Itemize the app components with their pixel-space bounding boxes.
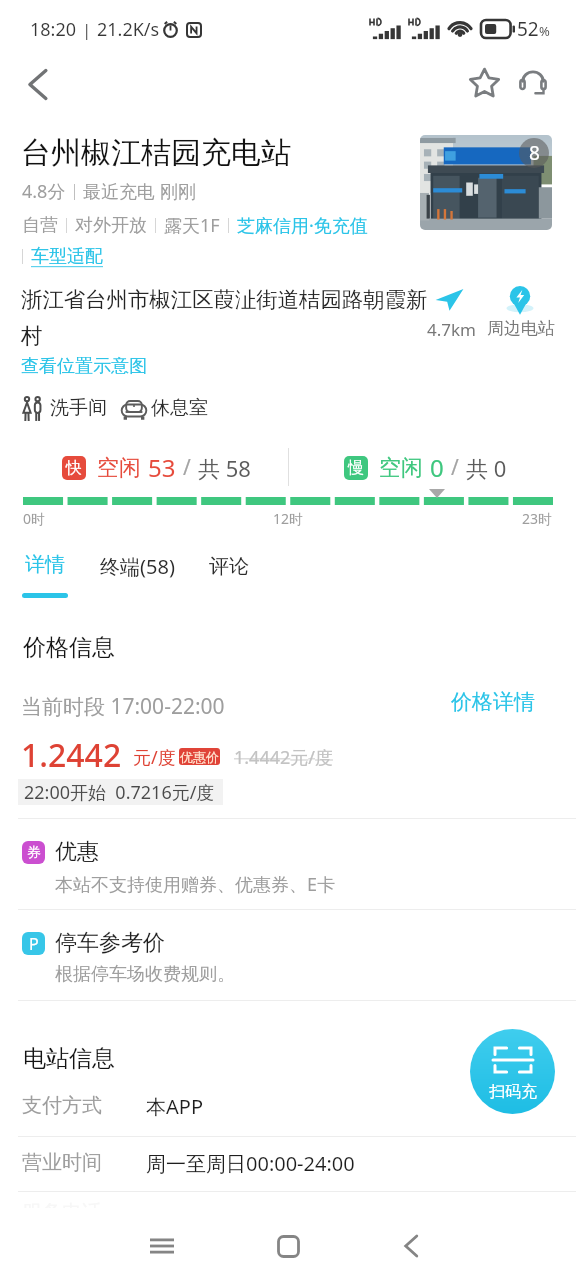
button[interactable]: 车型适配	[31, 245, 103, 268]
button[interactable]: Scan to charge	[470, 1029, 555, 1114]
staticText: 53	[148, 451, 176, 484]
staticText: 查看位置示意图	[21, 355, 147, 378]
staticText: 价格信息	[23, 633, 115, 662]
staticText: 23时	[522, 509, 553, 528]
staticText: 电站信息	[23, 1044, 115, 1073]
staticText: 支付方式	[22, 1093, 102, 1118]
button[interactable]: 营业时间	[0, 1143, 576, 1193]
staticText: 根据停车场收费规则。	[55, 963, 235, 986]
staticText: %	[539, 22, 550, 40]
staticText: 共 0	[466, 453, 507, 483]
staticText: 浙江省台州市椒江区葭沚街道桔园路朝霞新村	[21, 286, 433, 349]
staticText: 元/度	[133, 745, 176, 770]
staticText: 优惠	[55, 838, 99, 866]
button[interactable]: Station photos	[420, 135, 552, 230]
staticText: 1.2442	[21, 733, 122, 777]
button[interactable]: Recent apps	[132, 1216, 192, 1276]
staticText: 休息室	[151, 396, 208, 420]
staticText: 8	[529, 140, 540, 166]
staticText: 露天1F	[164, 213, 220, 238]
button[interactable]: 终端(58)	[85, 546, 189, 586]
button[interactable]: Back	[9, 56, 65, 112]
staticText: 18:20	[30, 17, 77, 42]
button[interactable]: 支付方式	[0, 1086, 576, 1136]
staticText: 共 58	[198, 453, 251, 483]
staticText: 52	[517, 16, 539, 42]
staticText: 详情	[25, 552, 65, 577]
staticText: 本站不支持使用赠券、优惠券、E卡	[55, 872, 336, 897]
button[interactable]: 评论	[198, 546, 260, 586]
staticText: 价格详情	[451, 689, 535, 715]
button[interactable]: Home	[258, 1216, 318, 1276]
button[interactable]: Back	[380, 1216, 440, 1276]
button[interactable]: 详情	[14, 546, 76, 598]
staticText: 4.7km	[427, 318, 476, 341]
staticText: 芝麻信用·免充值	[237, 213, 368, 238]
staticText: 自营	[22, 214, 58, 237]
staticText: 0时	[23, 509, 46, 528]
staticText: 周边电站	[487, 318, 555, 339]
staticText: 1.4442元/度	[234, 745, 333, 770]
staticText: 停车参考价	[55, 929, 165, 957]
staticText: 券	[27, 844, 41, 862]
button[interactable]: Navigate	[424, 282, 480, 340]
button[interactable]: 价格详情	[435, 686, 551, 718]
button[interactable]: P	[0, 918, 576, 998]
staticText: 车型适配	[31, 245, 103, 268]
staticText: 快	[66, 458, 82, 478]
staticText: 0	[430, 451, 444, 484]
staticText: 4.8分	[22, 179, 66, 204]
staticText: 当前时段 17:00-22:00	[21, 692, 225, 721]
staticText: 最近充电 刚刚	[83, 179, 196, 204]
staticText: 21.2K/s	[97, 17, 160, 42]
staticText: |	[82, 18, 92, 41]
button[interactable]: 券	[0, 828, 576, 908]
button[interactable]: Nearby stations	[486, 278, 558, 340]
staticText: 扫码充	[489, 1082, 537, 1102]
staticText: 台州椒江桔园充电站	[21, 134, 291, 172]
staticText: 空闲	[97, 454, 141, 482]
staticText: 慢	[348, 458, 364, 478]
staticText: 本APP	[146, 1093, 203, 1120]
staticText: 22:00开始 0.7216元/度	[24, 780, 215, 805]
button[interactable]: Customer support	[509, 59, 557, 107]
staticText: 终端(58)	[100, 553, 175, 580]
button[interactable]: Favorite	[460, 58, 508, 106]
staticText: 优惠价	[180, 749, 219, 765]
button[interactable]: 查看位置示意图	[21, 355, 147, 378]
staticText: /	[183, 453, 191, 482]
staticText: 洗手间	[50, 396, 107, 420]
staticText: 空闲	[379, 454, 423, 482]
staticText: 对外开放	[75, 214, 147, 237]
staticText: /	[451, 453, 459, 482]
staticText: 营业时间	[22, 1150, 102, 1175]
staticText: 12时	[273, 509, 304, 528]
staticText: P	[29, 933, 39, 955]
staticText: 周一至周日00:00-24:00	[146, 1150, 355, 1177]
staticText: 评论	[209, 554, 249, 579]
